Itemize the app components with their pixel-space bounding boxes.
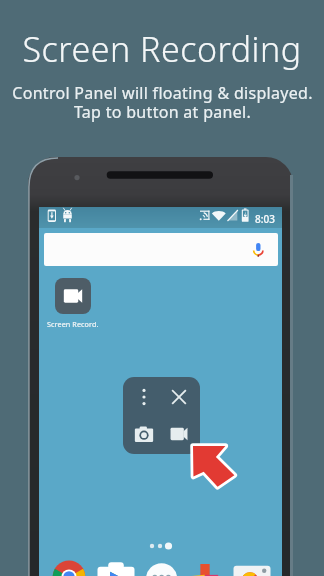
button[interactable]: Screenshot bbox=[129, 419, 159, 449]
button[interactable]: Close bbox=[164, 382, 194, 412]
staticText: Screen Recording bbox=[22, 26, 302, 72]
other: Tap cursor bbox=[193, 446, 235, 487]
staticText: Control Panel will floating & displayed.… bbox=[12, 82, 313, 123]
staticText: 8:03 bbox=[255, 212, 275, 226]
button[interactable]: More options bbox=[129, 382, 159, 412]
button[interactable]: Record video bbox=[164, 419, 194, 449]
button[interactable]: Search bbox=[44, 233, 278, 266]
staticText: Screen Record. bbox=[47, 319, 99, 329]
button[interactable]: Screen Record. bbox=[45, 278, 100, 329]
